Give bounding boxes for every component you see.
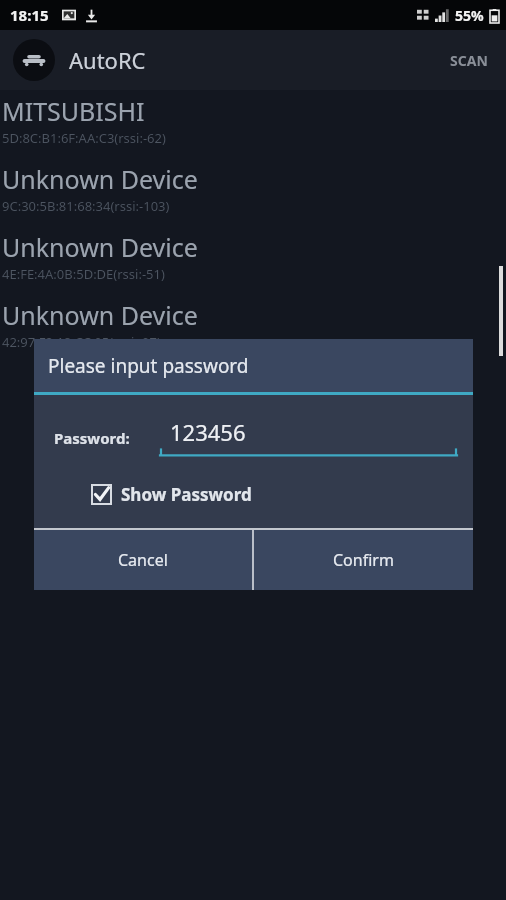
button[interactable]: 123456 (160, 417, 457, 459)
staticText: 18:15 (10, 5, 49, 25)
staticText: Password: (54, 428, 130, 448)
staticText: Unknown Device (2, 162, 198, 196)
button[interactable]: Unknown Device (0, 158, 506, 226)
button[interactable]: Unknown Device (0, 294, 506, 362)
button[interactable]: Confirm (254, 530, 473, 590)
staticText: AutoRC (69, 45, 146, 75)
staticText: MITSUBISHI (2, 94, 145, 128)
button[interactable]: Show Password (34, 481, 473, 516)
button[interactable]: Unknown Device (0, 226, 506, 294)
staticText: Unknown Device (2, 298, 198, 332)
staticText: SCAN (450, 51, 488, 70)
staticText: 5D:8C:B1:6F:AA:C3(rssi:-62) (2, 129, 166, 147)
staticText: 123456 (170, 417, 246, 447)
staticText: 55% (455, 6, 484, 25)
staticText: 42:97:F2:18:CC:95(rssi:-97) (2, 333, 161, 351)
staticText: Please input password (48, 353, 249, 379)
staticText: Unknown Device (2, 230, 198, 264)
staticText: 4E:FE:4A:0B:5D:DE(rssi:-51) (2, 265, 165, 283)
button[interactable]: SCAN (432, 37, 506, 84)
button[interactable]: Cancel (34, 530, 252, 590)
staticText: Confirm (333, 549, 394, 571)
staticText: Cancel (118, 549, 168, 571)
staticText: Show Password (121, 483, 252, 506)
button[interactable]: MITSUBISHI (0, 90, 506, 158)
staticText: 9C:30:5B:81:68:34(rssi:-103) (2, 197, 170, 215)
button[interactable]: AutoRC (13, 39, 146, 81)
